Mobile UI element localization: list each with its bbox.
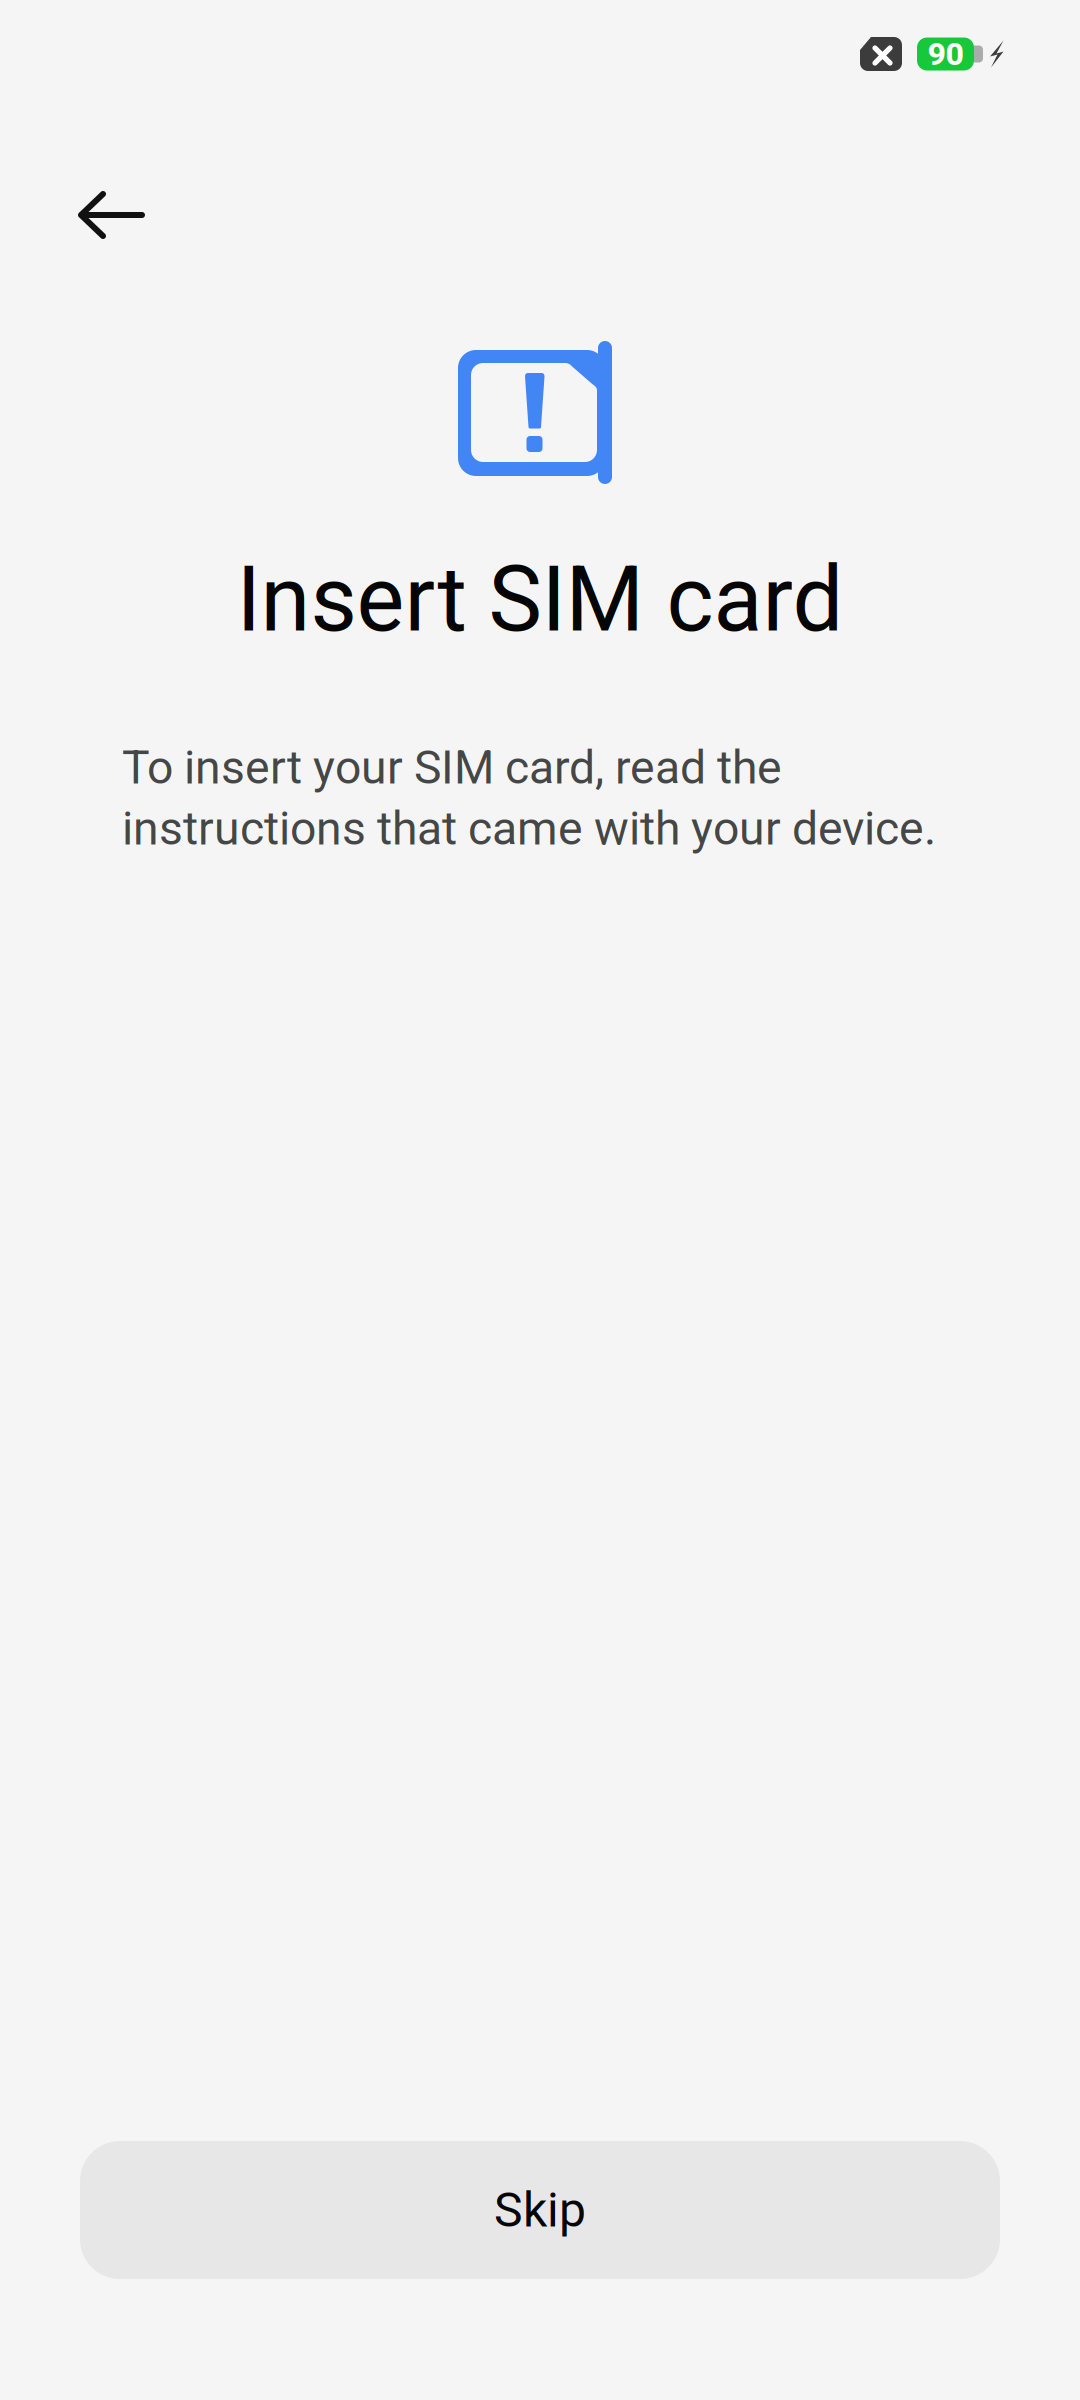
staticText: Skip [494, 2182, 586, 2238]
staticText: Insert SIM card [236, 547, 843, 652]
staticText: 90 [927, 35, 963, 73]
staticText: To insert your SIM card, read the instru… [122, 740, 936, 856]
button[interactable]: Back [38, 143, 182, 287]
button[interactable]: Skip [80, 2141, 1000, 2279]
